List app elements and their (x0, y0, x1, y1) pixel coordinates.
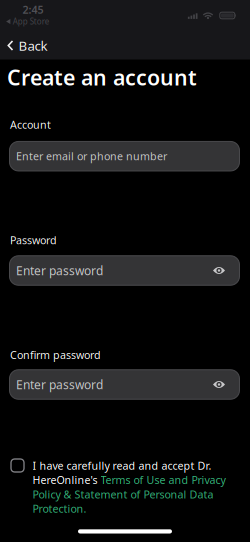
staticText: I have carefully read and accept Dr. (32, 458, 211, 473)
button[interactable]: Enter password (9, 256, 239, 285)
staticText: Confirm password (10, 348, 101, 362)
staticText: 2:45 (22, 2, 43, 17)
staticText: Account (10, 117, 51, 132)
button[interactable]: Protection. (32, 502, 86, 516)
button[interactable]: Accept terms (11, 459, 24, 472)
staticText: Terms of Use and Privacy (100, 473, 225, 487)
button[interactable]: Terms of Use and Privacy (100, 473, 225, 487)
staticText: Create an account (7, 63, 197, 91)
button[interactable]: Enter password (9, 370, 239, 399)
button[interactable]: Back (0, 35, 53, 55)
staticText: App Store (13, 16, 50, 27)
staticText: Enter email or phone number (16, 149, 167, 163)
staticText: Protection. (32, 502, 86, 516)
button[interactable]: Show password (207, 258, 231, 282)
staticText: Password (10, 233, 57, 247)
button[interactable]: Enter email or phone number (9, 141, 239, 171)
staticText: Enter password (16, 262, 103, 278)
button[interactable]: Policy & Statement of Personal Data (32, 487, 213, 501)
staticText: Back (18, 37, 47, 54)
staticText: HereOnline's (32, 473, 100, 487)
staticText: Enter password (16, 376, 103, 392)
staticText: Policy & Statement of Personal Data (32, 487, 213, 501)
button[interactable]: Show password (207, 372, 231, 396)
